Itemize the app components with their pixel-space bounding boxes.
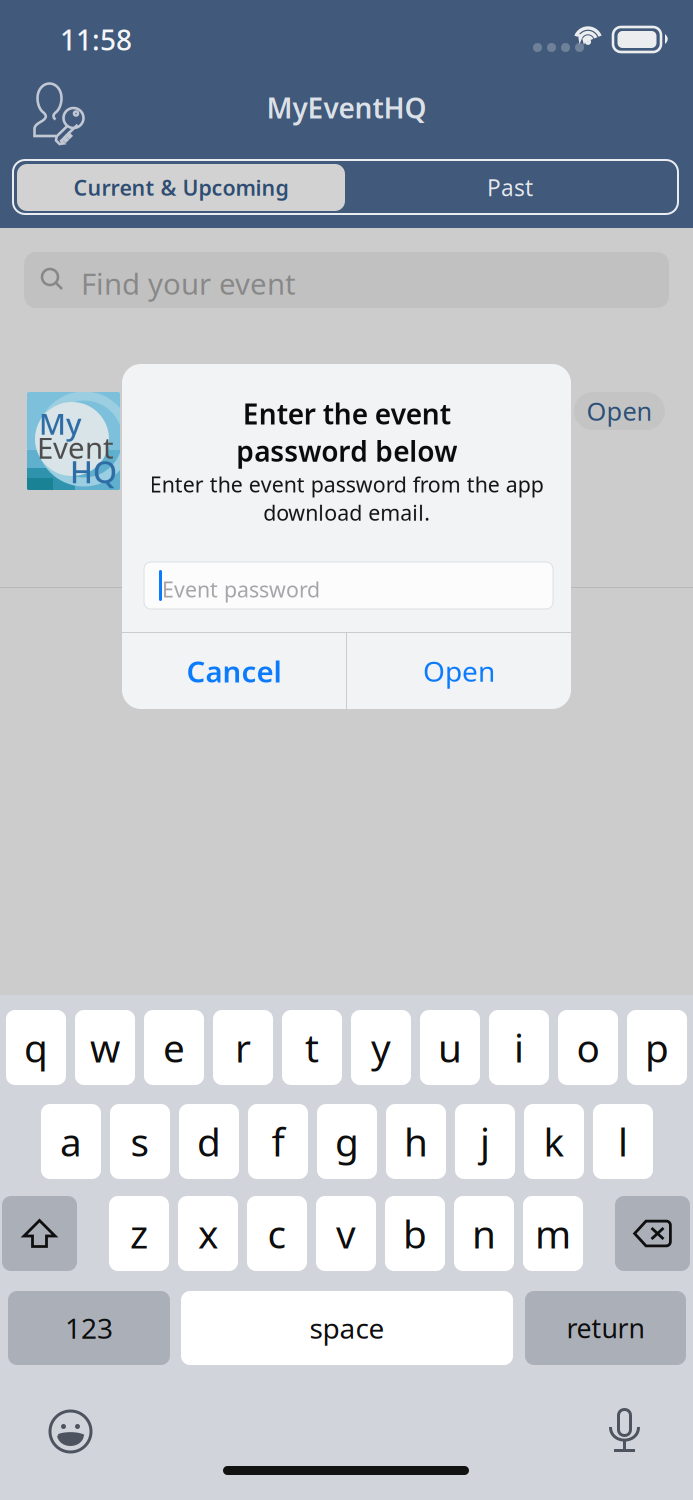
button[interactable]: j [455, 1104, 515, 1179]
staticText: m [535, 1208, 571, 1259]
staticText: Enter the event password below [236, 395, 457, 469]
staticText: w [90, 1022, 120, 1073]
staticText: s [130, 1116, 149, 1167]
staticText: q [24, 1022, 48, 1073]
button[interactable]: Current & Upcoming [17, 164, 345, 211]
button[interactable]: a [41, 1104, 101, 1179]
staticText: e [163, 1022, 185, 1073]
staticText: k [543, 1116, 564, 1167]
button[interactable]: Open [347, 633, 571, 709]
button[interactable]: Dictation [597, 1394, 652, 1465]
staticText: f [271, 1116, 284, 1167]
button[interactable]: p [627, 1010, 687, 1085]
staticText: 11:58 [60, 21, 132, 58]
staticText: Enter the event password from the app do… [149, 470, 543, 527]
staticText: v [336, 1208, 356, 1259]
button[interactable]: i [489, 1010, 549, 1085]
staticText: z [130, 1208, 148, 1259]
button[interactable]: e [144, 1010, 204, 1085]
button[interactable]: Delete [615, 1196, 690, 1271]
button[interactable]: m [523, 1196, 583, 1271]
button[interactable]: x [178, 1196, 238, 1271]
staticText: Current & Upcoming [73, 173, 288, 202]
button[interactable]: Emoji keyboard [36, 1397, 105, 1466]
staticText: My [39, 404, 81, 443]
staticText: p [645, 1022, 669, 1073]
staticText: o [576, 1022, 599, 1073]
button[interactable]: f [248, 1104, 308, 1179]
button[interactable]: l [593, 1104, 653, 1179]
staticText: 123 [65, 1309, 113, 1347]
button[interactable]: k [524, 1104, 584, 1179]
button[interactable]: Past [346, 164, 674, 211]
button[interactable]: 123 [8, 1291, 170, 1365]
staticText: j [480, 1116, 490, 1167]
staticText: return [566, 1310, 644, 1346]
staticText: n [472, 1208, 496, 1259]
button[interactable]: o [558, 1010, 618, 1085]
staticText: x [198, 1208, 218, 1259]
staticText: r [235, 1022, 251, 1073]
staticText: c [267, 1208, 286, 1259]
button[interactable]: z [109, 1196, 169, 1271]
staticText: Event [37, 428, 114, 467]
staticText: t [305, 1022, 319, 1073]
button[interactable]: s [110, 1104, 170, 1179]
staticText: Open [423, 652, 495, 690]
button[interactable]: space [181, 1291, 513, 1365]
button[interactable]: u [420, 1010, 480, 1085]
button[interactable]: y [351, 1010, 411, 1085]
button[interactable]: w [75, 1010, 135, 1085]
button[interactable]: r [213, 1010, 273, 1085]
button[interactable]: Open [574, 392, 665, 430]
staticText: l [618, 1116, 628, 1167]
button[interactable]: return [525, 1291, 686, 1365]
staticText: Event password [162, 575, 320, 603]
staticText: y [371, 1022, 391, 1073]
button[interactable]: q [6, 1010, 66, 1085]
staticText: HQ [70, 451, 117, 492]
button[interactable]: d [179, 1104, 239, 1179]
button[interactable]: v [316, 1196, 376, 1271]
button[interactable]: h [386, 1104, 446, 1179]
staticText: Cancel [186, 651, 281, 690]
staticText: d [197, 1116, 221, 1167]
button[interactable]: Cancel [122, 633, 346, 709]
button[interactable]: Shift [2, 1196, 77, 1271]
button[interactable]: n [454, 1196, 514, 1271]
button[interactable]: g [317, 1104, 377, 1179]
staticText: b [403, 1208, 427, 1259]
staticText: space [309, 1309, 384, 1347]
button[interactable]: t [282, 1010, 342, 1085]
staticText: Past [487, 172, 533, 202]
staticText: MyEventHQ [266, 89, 426, 126]
staticText: g [335, 1116, 359, 1167]
staticText: Open [586, 394, 652, 428]
staticText: Find your event [81, 264, 296, 303]
button[interactable]: Account login [33, 82, 85, 146]
button[interactable]: c [247, 1196, 307, 1271]
staticText: u [438, 1022, 462, 1073]
staticText: h [404, 1116, 428, 1167]
button[interactable]: b [385, 1196, 445, 1271]
staticText: i [514, 1022, 524, 1073]
staticText: a [60, 1116, 82, 1167]
